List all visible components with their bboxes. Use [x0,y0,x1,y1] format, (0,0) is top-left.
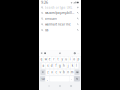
button[interactable]: m [70,69,74,75]
button[interactable]: h [62,63,66,68]
staticText: p [77,57,79,61]
staticText: w [45,57,47,61]
button[interactable]: Keyboard settings [74,52,76,54]
button[interactable]: y [60,56,64,62]
staticText: Search or type URL [45,5,73,9]
button[interactable]: a [42,63,45,68]
staticText: n [67,70,69,74]
button[interactable]: cvs.com/pay-my-bill-online [39,10,81,16]
button[interactable]: ?123 [40,76,45,81]
staticText: s [47,64,48,68]
staticText: q [41,57,43,61]
staticText: z [47,70,48,74]
staticText: m [71,70,74,74]
staticText: l [76,64,77,68]
staticText: e [49,57,51,61]
staticText: f [55,64,56,68]
staticText: a [43,64,45,68]
button[interactable]: Stickers [44,52,46,54]
button[interactable]: i [68,56,72,62]
button[interactable]: walmart near me [39,21,81,27]
button[interactable]: s [46,63,49,68]
button[interactable]: l [75,63,78,68]
staticText: j [68,64,69,68]
staticText: ?123 [40,77,44,80]
staticText: , [47,77,48,81]
staticText: u [65,57,67,61]
button[interactable]: cvs [39,27,81,33]
staticText: cvs [45,28,48,32]
staticText: cvs.com/pay-my-bill-online [45,11,74,15]
staticText: amazon [45,17,57,21]
button[interactable]: f [54,63,58,68]
staticText: h [63,64,65,68]
staticText: i [70,57,71,61]
button[interactable]: v [58,69,62,75]
button[interactable]: More [77,52,79,54]
button[interactable]: . [70,76,74,81]
staticText: o [73,57,75,61]
button[interactable]: z [46,69,49,75]
staticText: x [51,70,52,74]
button[interactable]: k [70,63,74,68]
staticText: b [63,70,65,74]
button[interactable]: t [56,56,60,62]
button[interactable]: Shift [40,69,45,75]
staticText: k [72,64,73,68]
staticText: 9:26 [41,0,48,5]
staticText: d [51,64,53,68]
button[interactable]: w [44,56,47,62]
button[interactable]: c [54,69,58,75]
button[interactable]: Search [74,76,80,81]
staticText: r [53,57,54,61]
button[interactable]: amazon [39,16,81,22]
button[interactable]: x [50,69,54,75]
button[interactable]: q [40,56,43,62]
button[interactable]: , [45,76,49,81]
button[interactable]: b [62,69,66,75]
button[interactable]: Search or type URL [39,5,81,10]
button[interactable]: d [50,63,54,68]
staticText: y [62,57,63,61]
staticText: . [71,77,72,81]
button[interactable]: g [58,63,62,68]
button[interactable]: Clipboard [41,52,43,54]
staticText: c [55,70,56,74]
button[interactable]: r [52,56,56,62]
button[interactable]: u [64,56,68,62]
button[interactable]: Voice input [59,52,61,54]
button[interactable]: Delete [75,69,80,75]
button[interactable]: n [66,69,70,75]
button[interactable]: j [66,63,70,68]
button[interactable]: o [72,56,76,62]
staticText: walmart near me [45,22,71,26]
staticText: g [59,64,61,68]
button[interactable]: p [77,56,80,62]
button[interactable]: e [48,56,51,62]
